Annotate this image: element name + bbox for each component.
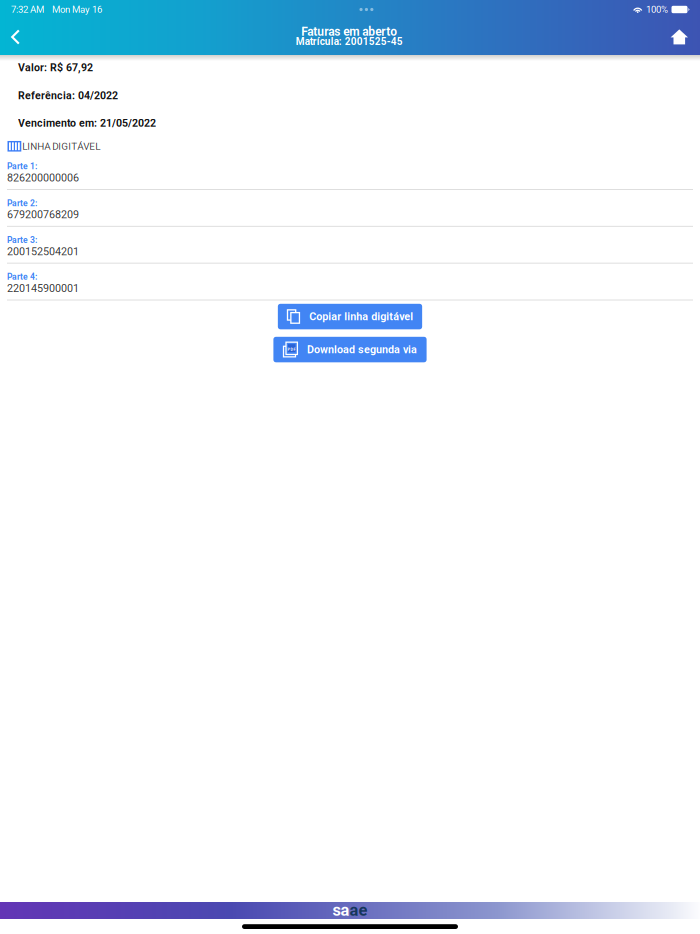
- staticText: 200152504201: [7, 245, 79, 258]
- staticText: Matrícula: 2001525-45: [296, 36, 403, 47]
- button[interactable]: Home: [660, 19, 700, 55]
- button[interactable]: Copiar linha digitável: [278, 304, 422, 329]
- staticText: Valor: R$ 67,92: [18, 61, 93, 74]
- staticText: Copiar linha digitável: [309, 310, 413, 323]
- staticText: Referência: 04/2022: [18, 89, 118, 102]
- staticText: Download segunda via: [307, 343, 417, 356]
- staticText: Faturas em aberto: [301, 25, 397, 39]
- staticText: Vencimento em: 21/05/2022: [18, 117, 156, 129]
- staticText: 100%: [646, 4, 668, 15]
- staticText: Parte 3:: [7, 235, 37, 245]
- staticText: Parte 1:: [7, 161, 37, 171]
- staticText: 220145900001: [7, 282, 79, 295]
- staticText: Parte 4:: [7, 272, 37, 282]
- staticText: 679200768209: [7, 208, 79, 221]
- staticText: Parte 2:: [7, 198, 37, 208]
- button[interactable]: Back: [0, 19, 31, 55]
- button[interactable]: PDF: [273, 337, 427, 362]
- staticText: 7:32 AM: [11, 4, 44, 15]
- staticText: LINHA DIGITÁVEL: [22, 140, 100, 152]
- staticText: 826200000006: [7, 171, 79, 184]
- staticText: Mon May 16: [52, 4, 102, 15]
- staticText: ae: [349, 900, 367, 920]
- staticText: PDF: [287, 347, 295, 352]
- staticText: sa: [332, 900, 349, 920]
